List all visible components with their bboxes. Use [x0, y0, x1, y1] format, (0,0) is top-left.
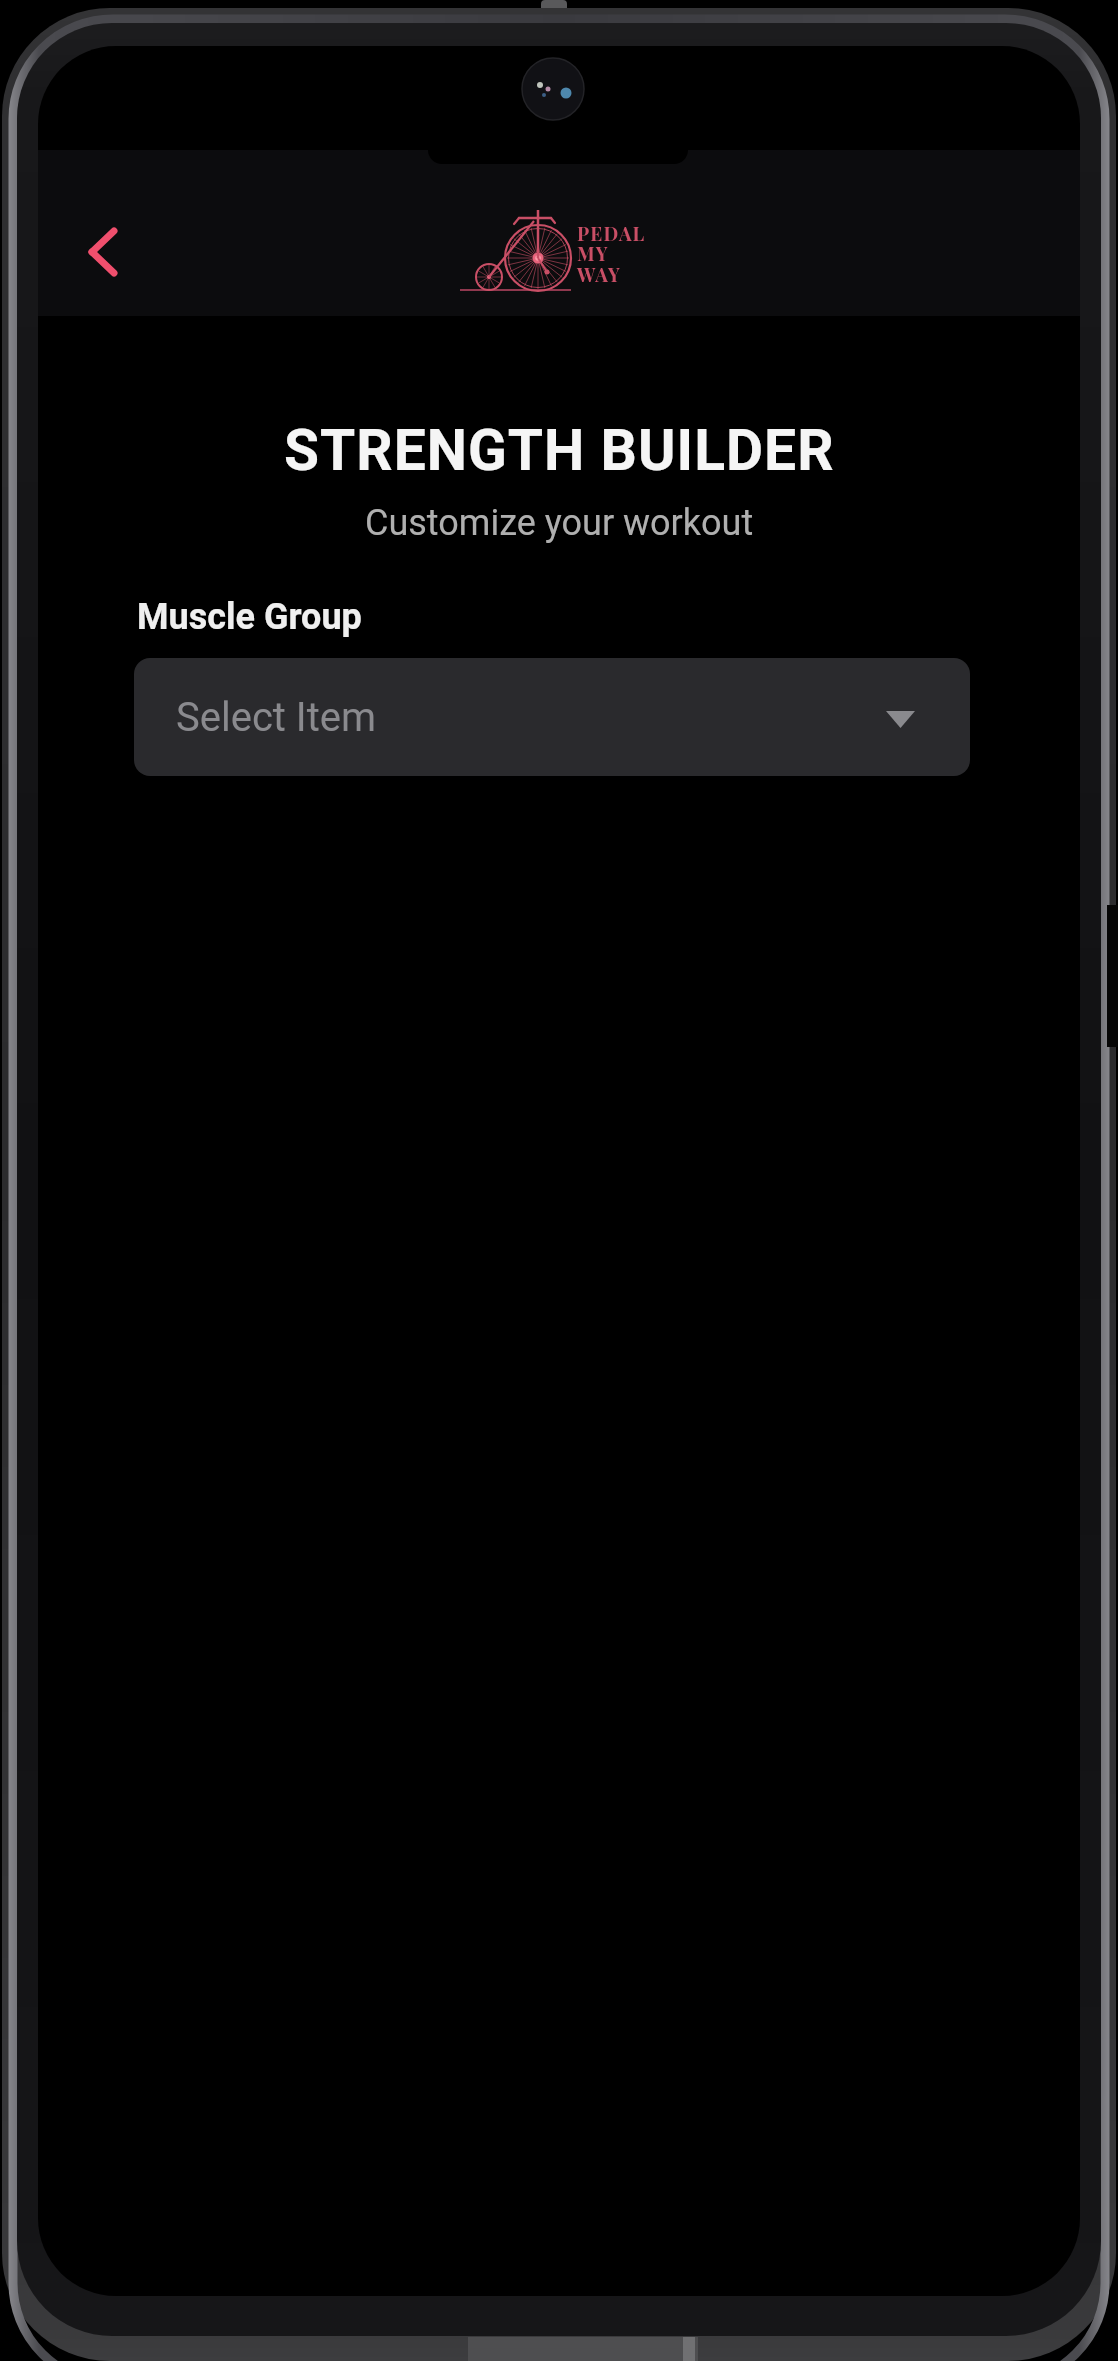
staticText: WAY [577, 261, 622, 286]
staticText: STRENGTH BUILDER [284, 417, 835, 484]
staticText: Select Item [176, 694, 377, 741]
staticText: Customize your workout [365, 502, 754, 544]
staticText: MY [577, 240, 609, 265]
button[interactable] [66, 212, 142, 292]
button[interactable]: Select Item [134, 658, 970, 776]
staticText: PEDAL [577, 220, 646, 245]
staticText: Muscle Group [137, 596, 362, 638]
